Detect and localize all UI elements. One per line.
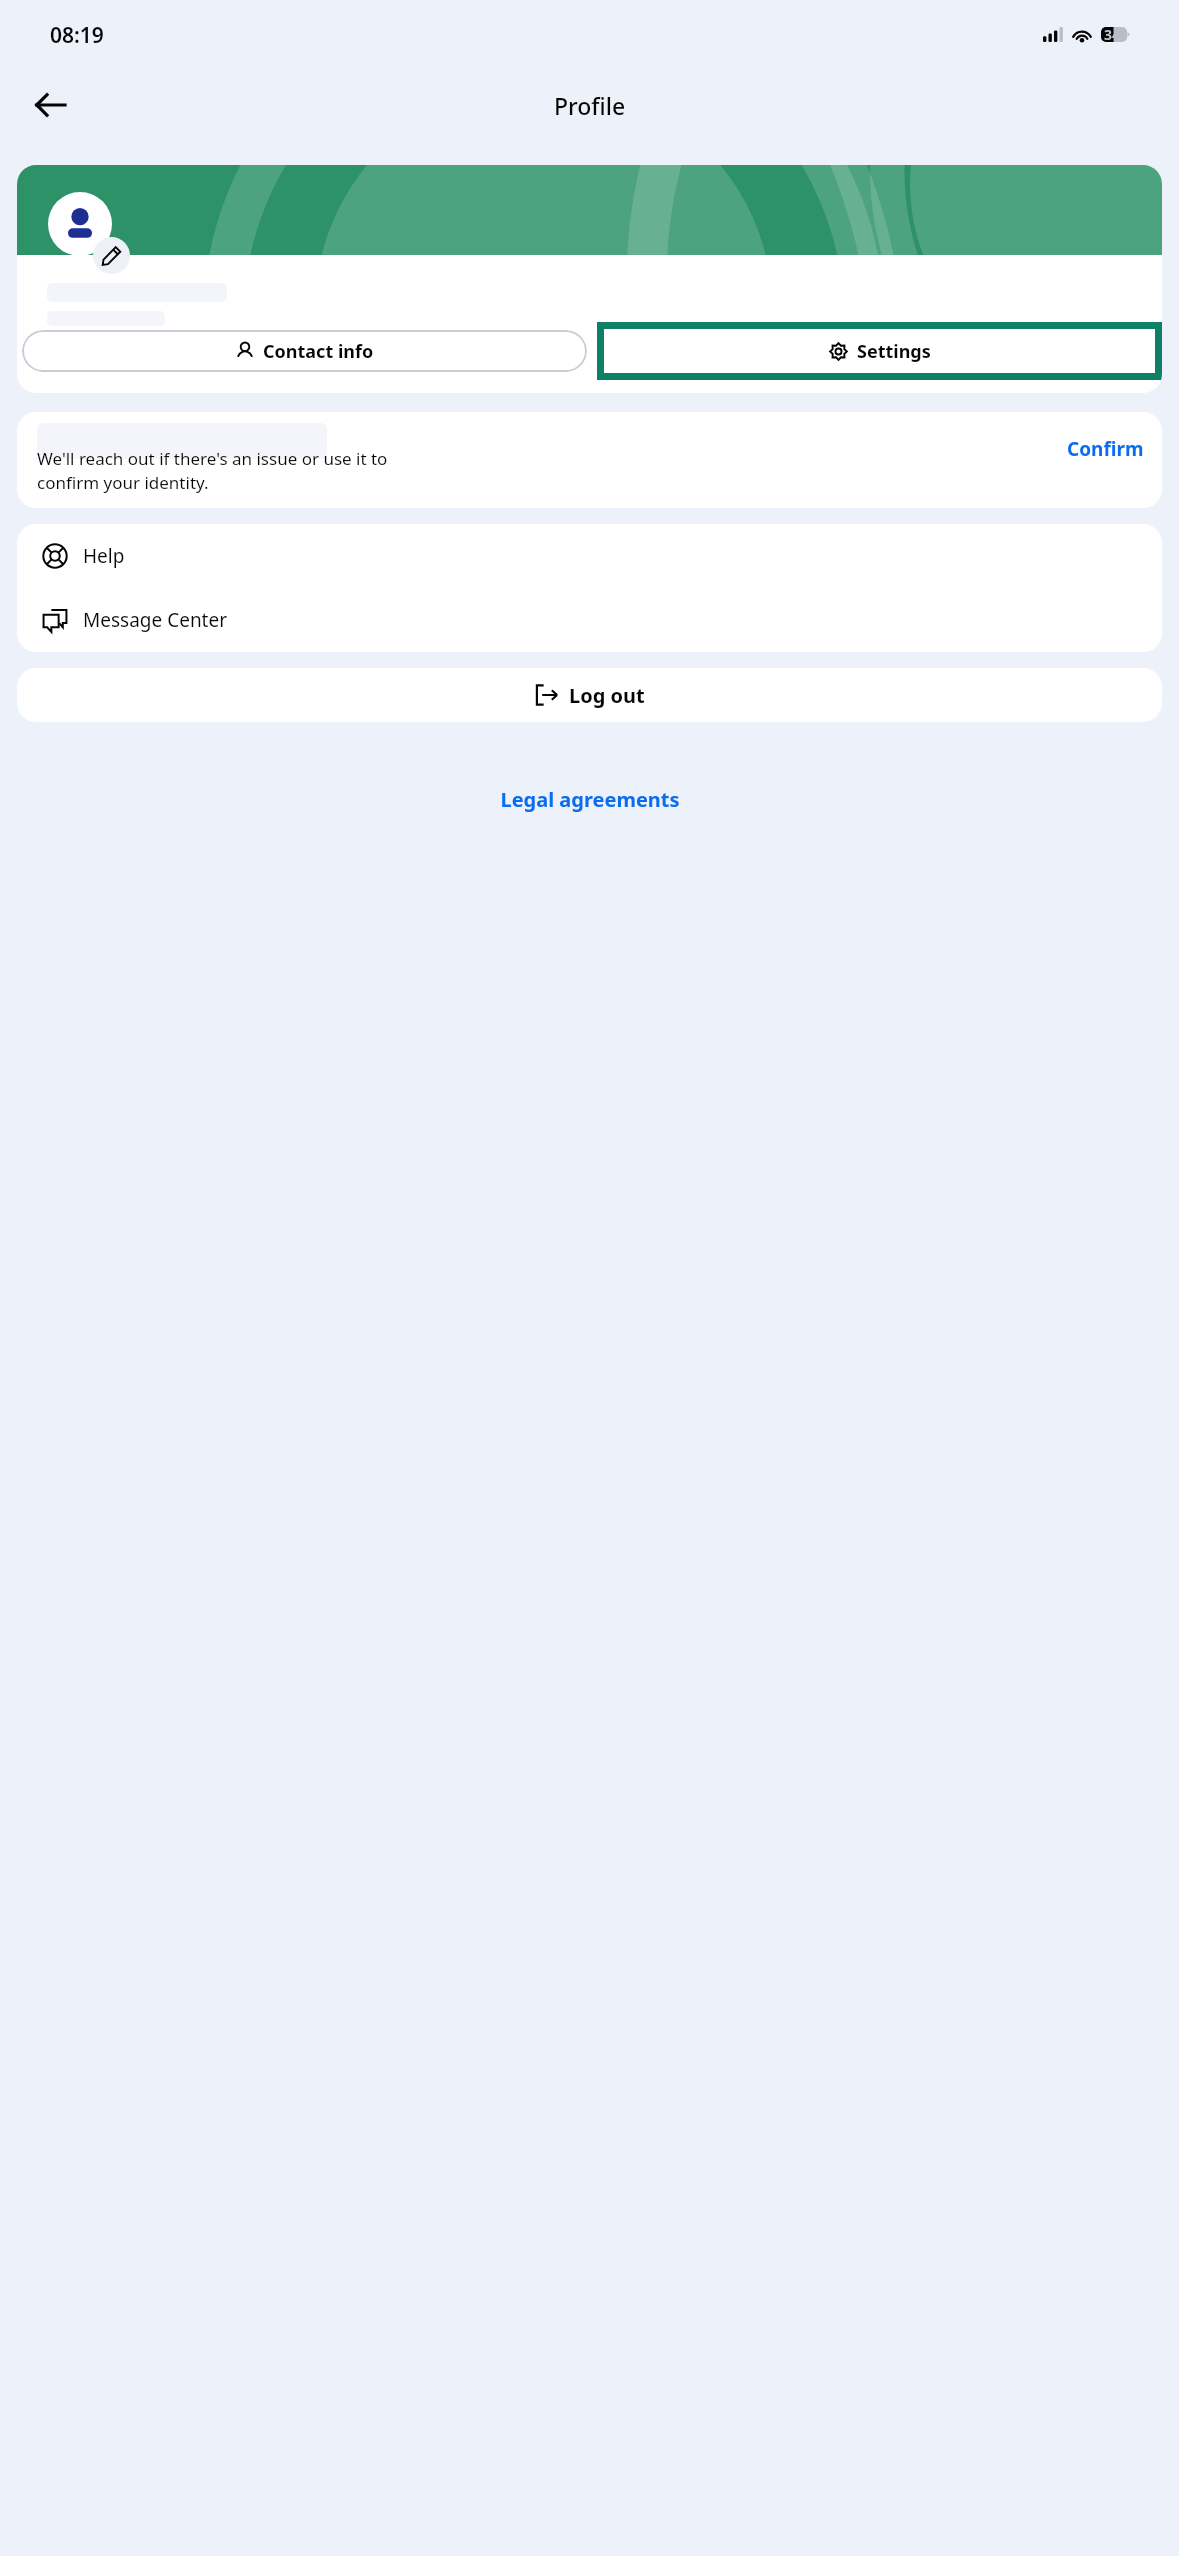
button[interactable]: Help <box>17 524 1162 588</box>
staticText: Log out <box>569 682 645 709</box>
button[interactable]: Edit profile photo <box>93 237 130 274</box>
button[interactable]: Settings <box>604 329 1155 373</box>
staticText: Settings <box>857 339 931 364</box>
button[interactable]: Legal agreements <box>488 780 692 819</box>
button[interactable]: Back <box>22 77 78 133</box>
button[interactable]: Confirm <box>1067 436 1144 462</box>
staticText: We'll reach out if there's an issue or u… <box>37 447 388 494</box>
staticText: 08:19 <box>50 21 104 50</box>
button[interactable]: We'll reach out if there's an issue or u… <box>17 412 1162 508</box>
staticText: Profile <box>554 90 626 121</box>
button[interactable]: Contact info <box>22 330 587 372</box>
button[interactable]: Message Center <box>17 588 1162 652</box>
staticText: Message Center <box>83 607 228 633</box>
staticText: 34 <box>1104 25 1121 44</box>
button[interactable]: Profile photo <box>48 192 112 256</box>
staticText: Help <box>83 543 125 569</box>
button[interactable]: Log out <box>17 668 1162 722</box>
staticText: Contact info <box>263 339 374 364</box>
